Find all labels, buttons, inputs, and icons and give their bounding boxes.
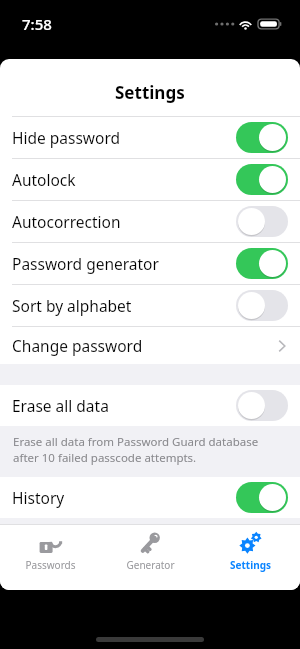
other: Off [236,390,288,421]
button[interactable]: History [0,477,300,518]
button[interactable]: Settings [200,524,300,590]
staticText: Sort by alphabet [12,295,132,316]
button[interactable]: Password generator [0,243,300,284]
button[interactable]: Passwords [0,524,100,590]
other: On [236,122,288,153]
button[interactable]: Generator [100,524,200,590]
staticText: Generator [126,558,175,572]
staticText: Erase all data from Password Guard datab… [13,434,259,465]
button[interactable]: Hide password [0,117,300,158]
staticText: Change password [12,335,143,356]
staticText: Autolock [12,169,76,190]
other: Off [236,290,288,321]
other: Off [236,206,288,237]
staticText: History [12,487,65,508]
staticText: Settings [115,81,185,104]
staticText: Settings [230,558,271,572]
staticText: Autocorrection [12,211,121,232]
staticText: Password generator [12,253,159,274]
other: On [236,482,288,513]
button[interactable]: Autolock [0,159,300,200]
button[interactable]: Change password [0,327,300,364]
other: On [236,248,288,279]
staticText: Hide password [12,127,121,148]
button[interactable]: Sort by alphabet [0,285,300,326]
button[interactable]: Erase all data [0,385,300,426]
staticText: Erase all data [12,395,109,416]
staticText: Passwords [25,558,76,572]
button[interactable]: Autocorrection [0,201,300,242]
staticText: 7:58 [22,14,52,34]
other: On [236,164,288,195]
